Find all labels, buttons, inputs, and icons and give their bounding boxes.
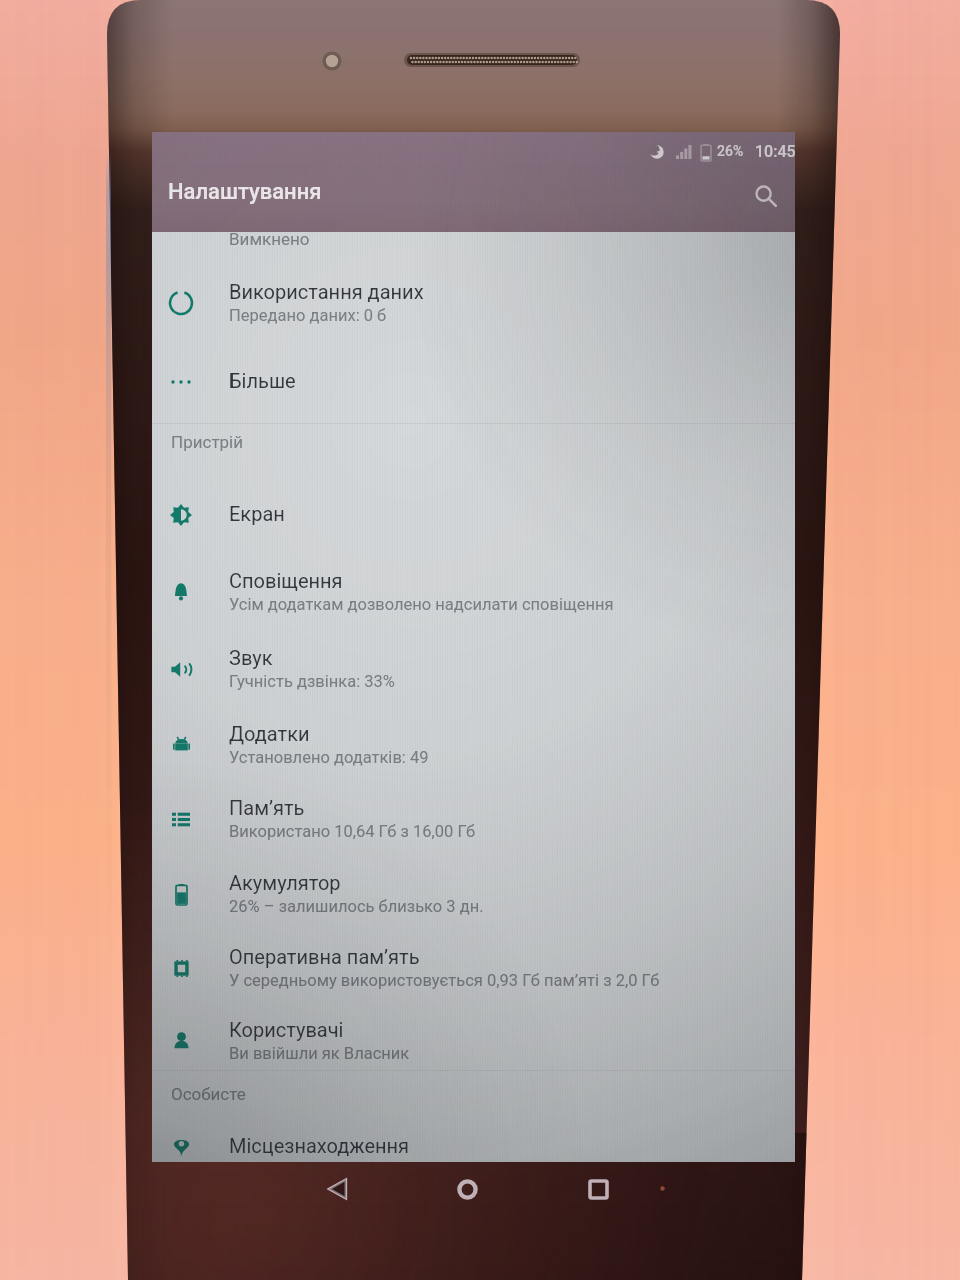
staticText: Додатки [229, 722, 310, 745]
staticText: Більше [229, 369, 296, 392]
staticText: Пристрій [171, 432, 244, 452]
button[interactable]: Back [299, 1151, 375, 1227]
button[interactable]: Екран [152, 478, 795, 552]
staticText: Вимкнено [229, 229, 310, 249]
staticText: Оперативна пам’ять [229, 945, 420, 968]
staticText: Пам’ять [229, 796, 305, 819]
button[interactable]: Звук [152, 632, 795, 706]
button[interactable]: Recents [560, 1151, 636, 1227]
staticText: Особисте [171, 1084, 246, 1104]
button[interactable]: Користувачі [152, 1004, 795, 1078]
button[interactable]: Використання даних [152, 266, 795, 340]
staticText: 26% [717, 143, 744, 159]
button[interactable]: Оперативна пам’ять [152, 931, 795, 1005]
staticText: Ви ввійшли як Власник [229, 1044, 410, 1063]
staticText: Сповіщення [229, 569, 343, 592]
staticText: 26% – залишилось близько 3 дн. [229, 897, 484, 916]
staticText: Налаштування [168, 179, 322, 205]
button[interactable]: Пам’ять [152, 782, 795, 856]
staticText: Користувачі [229, 1018, 344, 1041]
staticText: Звук [229, 646, 273, 669]
staticText: Використання даних [229, 280, 424, 303]
staticText: Установлено додатків: 49 [229, 748, 429, 767]
staticText: Гучність дзвінка: 33% [229, 672, 395, 691]
button[interactable]: Сповіщення [152, 555, 795, 629]
staticText: Передано даних: 0 б [229, 306, 387, 325]
staticText: Використано 10,64 Гб з 16,00 Гб [229, 822, 476, 841]
button[interactable]: Додатки [152, 708, 795, 782]
button[interactable]: Більше [152, 345, 795, 419]
staticText: Усім додаткам дозволено надсилати сповіщ… [229, 595, 614, 614]
button[interactable]: Акумулятор [152, 857, 795, 931]
button[interactable]: Місцезнаходження [152, 1110, 795, 1184]
staticText: 10:45 [755, 142, 796, 161]
staticText: Акумулятор [229, 871, 341, 894]
staticText: Місцезнаходження [229, 1134, 410, 1157]
button[interactable]: Search [742, 172, 790, 220]
staticText: У середньому використовується 0,93 Гб па… [229, 971, 660, 990]
button[interactable]: Home [429, 1151, 505, 1227]
staticText: Екран [229, 502, 285, 525]
